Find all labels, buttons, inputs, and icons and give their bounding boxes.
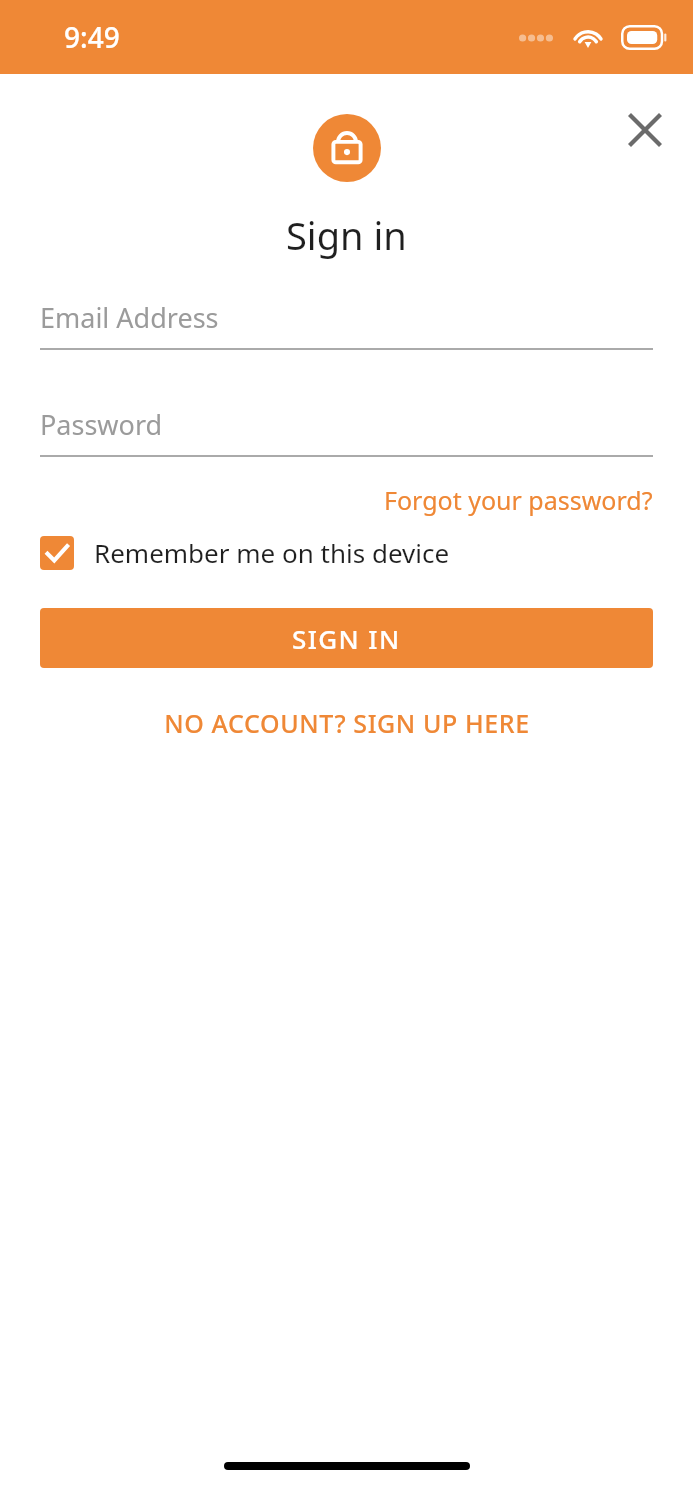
staticText: Password (40, 406, 163, 443)
staticText: Sign in (286, 209, 407, 261)
other: Remember me checkbox (40, 536, 74, 570)
button[interactable]: Close (617, 102, 673, 158)
button[interactable]: Email Address (40, 299, 653, 350)
button[interactable]: Forgot your password? (384, 481, 653, 519)
staticText: 9:49 (64, 18, 120, 56)
staticText: Remember me on this device (94, 535, 450, 570)
button[interactable]: SIGN IN (40, 608, 653, 668)
button[interactable]: NO ACCOUNT? SIGN UP HERE (164, 700, 530, 746)
staticText: SIGN IN (292, 621, 401, 656)
button[interactable]: Remember me checkbox (40, 535, 653, 570)
button[interactable]: Password (40, 406, 653, 457)
staticText: Email Address (40, 299, 219, 336)
